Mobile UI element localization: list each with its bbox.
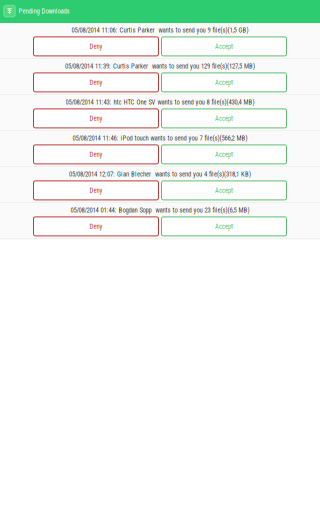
staticText: 05/08/2014 11:43: htc HTC One SV wants t… xyxy=(65,98,254,106)
button[interactable]: Accept xyxy=(161,145,286,164)
button[interactable]: Deny xyxy=(33,109,158,128)
button[interactable]: Accept xyxy=(161,217,286,236)
staticText: Accept xyxy=(215,42,233,50)
button[interactable]: Accept xyxy=(161,181,286,200)
staticText: Accept xyxy=(215,222,233,230)
staticText: Pending Downloads xyxy=(19,7,70,15)
staticText: 05/08/2014 11:39: Curtis Parker wants to… xyxy=(65,62,255,70)
button[interactable]: Deny xyxy=(33,145,158,164)
button[interactable]: Accept xyxy=(161,73,286,92)
staticText: Accept xyxy=(215,150,233,158)
button[interactable]: Deny xyxy=(33,217,158,236)
staticText: 05/08/2014 12:07: Gian Blecher wants to … xyxy=(69,170,251,178)
staticText: Accept xyxy=(215,114,233,122)
staticText: Deny xyxy=(89,222,102,230)
staticText: Deny xyxy=(89,150,102,158)
button[interactable]: Deny xyxy=(33,181,158,200)
staticText: Deny xyxy=(89,114,102,122)
staticText: Accept xyxy=(215,78,233,86)
button[interactable]: Accept xyxy=(161,109,286,128)
button[interactable]: Deny xyxy=(33,37,158,56)
staticText: 05/08/2014 01:44: Bogdan Sopp wants to s… xyxy=(70,206,249,214)
staticText: 05/08/2014 11:06: Curtis Parker wants to… xyxy=(71,26,248,34)
staticText: 05/08/2014 11:46: iPod touch wants to se… xyxy=(72,134,247,142)
button[interactable]: Accept xyxy=(161,37,286,56)
staticText: Deny xyxy=(89,78,102,86)
staticText: Deny xyxy=(89,42,102,50)
staticText: Accept xyxy=(215,186,233,194)
staticText: Deny xyxy=(89,186,102,194)
button[interactable]: Deny xyxy=(33,73,158,92)
